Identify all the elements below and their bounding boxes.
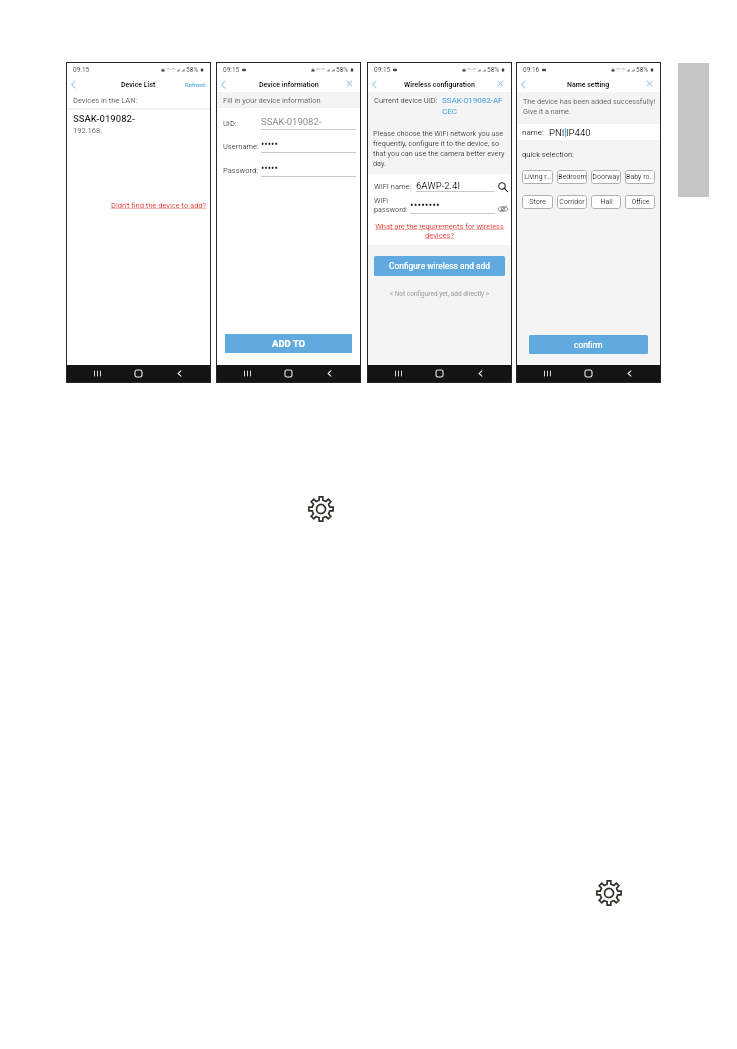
staticText: Fill in your device information (223, 96, 321, 105)
button[interactable]: Home (582, 367, 595, 380)
button[interactable]: Back (68, 79, 79, 90)
staticText: Please choose the WiFi network you use f… (373, 129, 508, 167)
button[interactable]: Settings (308, 496, 334, 522)
staticText: Current device UID: (374, 96, 438, 105)
staticText: 09:15 (223, 66, 240, 74)
staticText: Corridor (559, 198, 585, 206)
button[interactable]: Back (369, 79, 380, 90)
button[interactable]: Show password (498, 204, 508, 214)
button[interactable]: Recents (541, 367, 554, 380)
staticText: WiFi password: (374, 196, 410, 213)
staticText: quick selection: (522, 150, 574, 159)
staticText: Living r... (524, 173, 552, 181)
staticText: Baby ro... (626, 173, 655, 181)
button[interactable]: What are the requirements for wireless d… (374, 222, 505, 240)
staticText: 09:15 (374, 66, 391, 74)
button[interactable]: Refresh (185, 81, 206, 88)
staticText: Username: (223, 142, 261, 151)
staticText: IP440 (566, 127, 591, 138)
staticText: SSAK-019082- (261, 116, 322, 127)
staticText: SSAK-019082- (73, 113, 136, 124)
button[interactable]: confirm (529, 335, 648, 354)
button[interactable]: Close (496, 79, 505, 88)
button[interactable]: Home (433, 367, 446, 380)
staticText: Name setting (567, 81, 610, 89)
staticText: UID: (223, 119, 261, 128)
staticText: 58% (636, 66, 649, 74)
staticText: Bedroom (558, 173, 587, 181)
button[interactable]: Home (132, 367, 145, 380)
staticText: •••••••• (410, 199, 440, 212)
button[interactable]: Back (173, 367, 186, 380)
staticText: The device has been added successfully! … (523, 97, 657, 115)
button[interactable]: Store (522, 195, 553, 209)
button[interactable]: Search (498, 182, 508, 192)
button[interactable]: Configure wireless and add (374, 256, 505, 276)
button[interactable]: Settings (596, 880, 622, 906)
staticText: Store (529, 198, 546, 206)
button[interactable]: Hall (591, 195, 621, 209)
button[interactable]: Back (474, 367, 487, 380)
staticText: ••••• (261, 163, 278, 175)
staticText: Device information (259, 81, 319, 89)
staticText: Configure wireless and add (389, 261, 490, 271)
staticText: Hall (600, 198, 613, 206)
button[interactable]: Back (323, 367, 336, 380)
button[interactable]: Recents (241, 367, 254, 380)
button[interactable]: SSAK-019082- (67, 110, 210, 138)
staticText: confirm (574, 340, 603, 350)
staticText: 09:16 (523, 66, 540, 74)
staticText: SSAK-019082-AF CEC (442, 96, 509, 116)
button[interactable]: Corridor (557, 195, 587, 209)
staticText: Office (631, 198, 650, 206)
staticText: ADD TO (272, 338, 306, 349)
button[interactable]: Home (282, 367, 295, 380)
staticText: PNI (549, 127, 565, 138)
button[interactable]: Recents (91, 367, 104, 380)
button[interactable]: Didn't find the device to add? (111, 201, 207, 210)
button[interactable]: < Not configured yet, add directly > (368, 290, 511, 298)
staticText: 6AWP-2.4I (416, 180, 461, 191)
button[interactable]: Doorway (591, 170, 621, 184)
button[interactable]: Recents (392, 367, 405, 380)
staticText: name: (522, 128, 544, 137)
staticText: Devices in the LAN: (73, 96, 138, 105)
button[interactable]: Close (645, 79, 654, 88)
staticText: WIFI name: (374, 182, 412, 191)
staticText: 09:15 (73, 66, 90, 74)
staticText: 192.168. (73, 126, 103, 135)
staticText: Password: (223, 166, 261, 175)
staticText: 58% (487, 66, 500, 74)
staticText: Wireless configuration (404, 81, 475, 89)
staticText: 58% (186, 66, 199, 74)
staticText: Doorway (592, 173, 620, 181)
button[interactable]: Bedroom (557, 170, 587, 184)
button[interactable]: Living r... (522, 170, 553, 184)
button[interactable]: Close (345, 79, 354, 88)
staticText: 58% (336, 66, 349, 74)
button[interactable]: Back (623, 367, 636, 380)
staticText: ••••• (261, 139, 278, 151)
button[interactable]: Back (518, 79, 529, 90)
staticText: Device List (121, 81, 156, 89)
button[interactable]: Office (625, 195, 655, 209)
button[interactable]: Back (218, 79, 229, 90)
button[interactable]: Baby ro... (625, 170, 655, 184)
button[interactable]: ADD TO (225, 334, 352, 353)
